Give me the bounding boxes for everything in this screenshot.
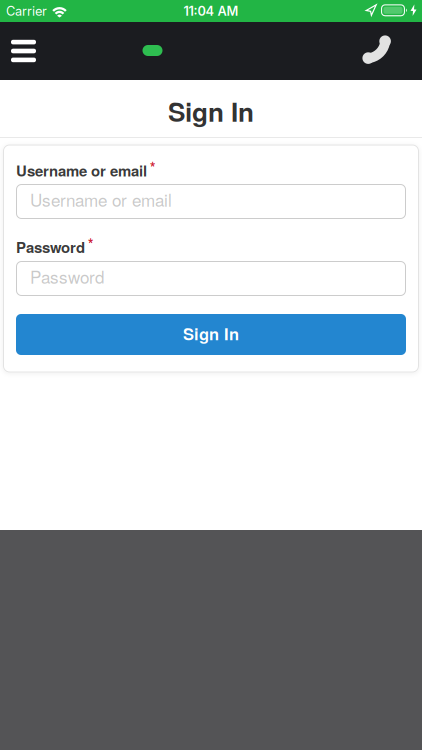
staticText: * bbox=[88, 234, 93, 253]
staticText: Sign In bbox=[168, 92, 254, 130]
staticText: Username or email bbox=[16, 160, 147, 181]
button[interactable]: Sign In bbox=[16, 314, 406, 355]
button[interactable]: Password bbox=[16, 261, 406, 296]
staticText: * bbox=[150, 157, 155, 177]
button[interactable]: Menu bbox=[1, 29, 45, 73]
staticText: Username or email bbox=[30, 187, 172, 212]
staticText: Sign In bbox=[183, 322, 239, 345]
staticText: Carrier bbox=[6, 3, 47, 19]
button[interactable]: Home bbox=[132, 30, 172, 70]
button[interactable]: Username or email bbox=[16, 184, 406, 219]
staticText: Password bbox=[30, 264, 104, 289]
staticText: 11:04 AM bbox=[183, 3, 238, 19]
staticText: Password bbox=[16, 236, 85, 258]
button[interactable]: Call bbox=[355, 28, 399, 72]
